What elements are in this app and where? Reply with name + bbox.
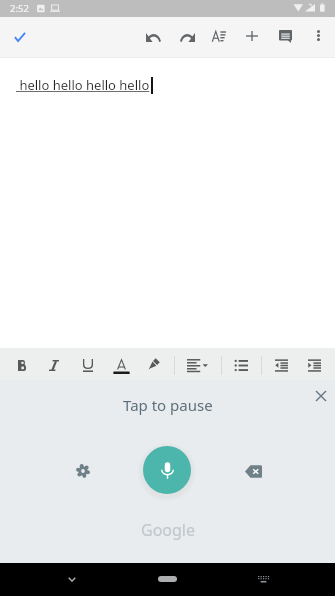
staticText: Tap to pause [123, 395, 213, 415]
button[interactable]: Done [2, 19, 38, 55]
button[interactable]: Highlight color [139, 348, 169, 380]
button[interactable]: Home [158, 576, 177, 582]
button[interactable]: More options [302, 17, 334, 57]
button[interactable]: Italic [39, 348, 69, 380]
staticText: hello hello hello hello [16, 76, 150, 94]
button[interactable]: Underline [73, 348, 103, 380]
button[interactable]: Microphone, tap to pause [143, 446, 191, 494]
button[interactable]: Backspace [239, 457, 267, 485]
button[interactable]: Hide keyboard [57, 565, 86, 594]
button[interactable]: Change keyboard [249, 565, 278, 594]
button[interactable]: Text color [106, 348, 136, 380]
button[interactable]: Comment [269, 17, 301, 57]
button[interactable]: Bulleted list [226, 348, 256, 380]
button[interactable]: Close voice typing [306, 381, 335, 411]
button[interactable]: Paragraph alignment [182, 348, 212, 380]
button[interactable]: Decrease indent [266, 348, 296, 380]
staticText: Google [141, 519, 196, 541]
button[interactable]: Voice typing settings [69, 457, 97, 485]
button[interactable]: Text formatting [203, 17, 235, 57]
button[interactable]: Undo [137, 17, 169, 57]
staticText: 2:52 [10, 2, 29, 15]
button[interactable]: Insert [236, 17, 268, 57]
button[interactable]: Increase indent [299, 348, 329, 380]
button[interactable]: Bold [7, 348, 37, 380]
button[interactable]: Redo [171, 17, 203, 57]
